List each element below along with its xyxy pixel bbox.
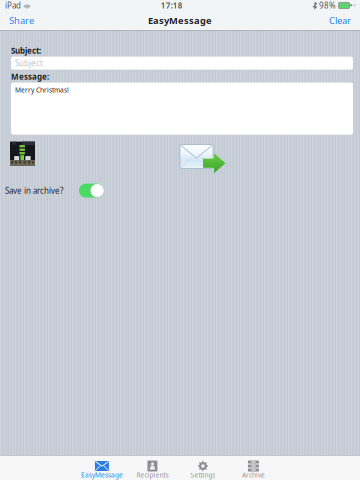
button[interactable]: Send bbox=[0, 141, 226, 179]
staticText: 98% bbox=[319, 0, 336, 11]
staticText: Archive bbox=[242, 471, 265, 479]
staticText: Recipients bbox=[136, 471, 168, 479]
button[interactable]: Attached photo bbox=[0, 141, 35, 166]
button[interactable]: Share bbox=[0, 11, 40, 30]
staticText: EasyMessage bbox=[81, 471, 123, 479]
button[interactable]: Clear bbox=[323, 11, 360, 30]
staticText: Subject bbox=[15, 58, 43, 68]
staticText: Merry Christmas! bbox=[15, 86, 69, 94]
button[interactable]: Subject bbox=[0, 57, 353, 70]
staticText: Message: bbox=[11, 71, 49, 82]
staticText: Subject: bbox=[11, 45, 41, 56]
staticText: 17:18 bbox=[161, 0, 183, 11]
button[interactable]: EasyMessage bbox=[77, 456, 127, 480]
staticText: Share bbox=[9, 14, 34, 27]
button[interactable]: Archive bbox=[228, 456, 279, 480]
staticText: Save in archive? bbox=[5, 185, 63, 196]
staticText: EasyMessage bbox=[148, 14, 212, 27]
staticText: Settings bbox=[190, 471, 215, 479]
staticText: iPad bbox=[5, 0, 21, 11]
button[interactable]: Recipients bbox=[127, 456, 178, 480]
button[interactable]: Save in archive bbox=[79, 184, 104, 198]
staticText: Clear bbox=[329, 14, 351, 27]
button[interactable]: Settings bbox=[178, 456, 228, 480]
button[interactable]: Merry Christmas! bbox=[0, 83, 353, 135]
